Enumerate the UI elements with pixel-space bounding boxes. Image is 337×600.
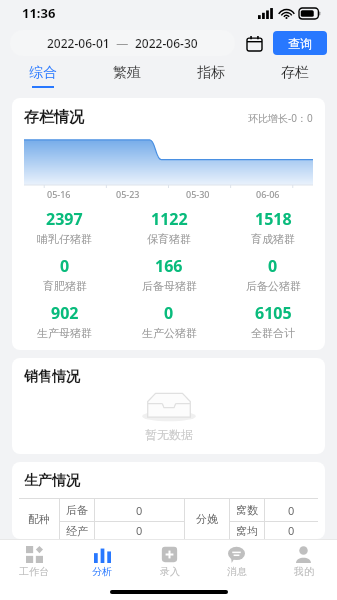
button[interactable]: 0	[12, 255, 117, 293]
button[interactable]: 繁殖	[85, 60, 169, 92]
staticText: 后备	[66, 503, 88, 517]
staticText: 2022-06-30	[135, 35, 198, 51]
staticText: 育成猪群	[251, 232, 295, 246]
staticText: 全群合计	[251, 326, 295, 340]
staticText: 05-30	[186, 188, 210, 200]
button[interactable]: 2397	[12, 208, 117, 246]
button[interactable]: 录入	[136, 540, 203, 584]
button[interactable]: 分析	[68, 540, 136, 584]
staticText: 配种	[28, 512, 50, 526]
staticText: 综合	[29, 64, 57, 82]
staticText: 0	[136, 503, 143, 518]
staticText: 工作台	[19, 565, 49, 578]
button[interactable]: 综合	[0, 60, 85, 92]
staticText: 902	[51, 302, 79, 324]
staticText: 后备公猪群	[246, 279, 301, 293]
staticText: 生产公猪群	[142, 326, 197, 340]
staticText: 06-06	[256, 188, 280, 200]
staticText: 生产情况	[24, 472, 80, 490]
staticText: 0	[288, 503, 295, 518]
staticText: 暂无数据	[145, 427, 193, 442]
button[interactable]: 6105	[221, 302, 325, 340]
staticText: —	[110, 35, 135, 51]
staticText: 0	[164, 302, 174, 324]
staticText: 哺乳仔猪群	[37, 232, 92, 246]
staticText: 166	[155, 255, 183, 277]
button[interactable]: 1122	[117, 208, 221, 246]
staticText: 0	[60, 255, 70, 277]
staticText: 经产	[66, 524, 88, 538]
staticText: 保育猪群	[147, 232, 191, 246]
staticText: 11:36	[22, 4, 56, 22]
staticText: 后备母猪群	[142, 279, 197, 293]
staticText: 指标	[197, 64, 225, 82]
button[interactable]: 2022-06-01	[10, 30, 235, 56]
staticText: 环比增长-0：0	[248, 111, 313, 125]
button[interactable]: 存栏	[253, 60, 337, 92]
staticText: 育肥猪群	[43, 279, 87, 293]
staticText: 2022-06-01	[47, 35, 110, 51]
staticText: 我的	[294, 565, 314, 578]
button[interactable]: 我的	[270, 540, 337, 584]
staticText: 消息	[227, 565, 247, 578]
staticText: 05-16	[47, 188, 71, 200]
staticText: 1122	[151, 208, 188, 230]
staticText: 录入	[160, 565, 180, 578]
staticText: 05-23	[116, 188, 140, 200]
staticText: 1518	[255, 208, 292, 230]
staticText: 销售情况	[24, 368, 80, 386]
button[interactable]: 消息	[203, 540, 270, 584]
staticText: 繁殖	[113, 64, 141, 82]
button[interactable]: 0	[117, 302, 221, 340]
staticText: 生产母猪群	[37, 326, 92, 340]
staticText: 窝均	[236, 524, 258, 538]
staticText: 0	[136, 523, 143, 538]
staticText: 分娩	[196, 512, 218, 526]
button[interactable]: 0	[221, 255, 325, 293]
staticText: 分析	[92, 565, 112, 578]
button[interactable]: Calendar	[243, 32, 265, 54]
staticText: 0	[268, 255, 278, 277]
staticText: 查询	[288, 36, 312, 51]
staticText: 窝数	[236, 503, 258, 517]
button[interactable]: 166	[117, 255, 221, 293]
button[interactable]: 工作台	[0, 540, 68, 584]
staticText: 0	[288, 523, 295, 538]
staticText: 存栏情况	[24, 108, 84, 127]
staticText: 6105	[255, 302, 292, 324]
button[interactable]: 902	[12, 302, 117, 340]
button[interactable]: 1518	[221, 208, 325, 246]
staticText: 2397	[46, 208, 83, 230]
button[interactable]: 查询	[273, 31, 327, 55]
staticText: 存栏	[281, 64, 309, 82]
button[interactable]: 指标	[169, 60, 253, 92]
